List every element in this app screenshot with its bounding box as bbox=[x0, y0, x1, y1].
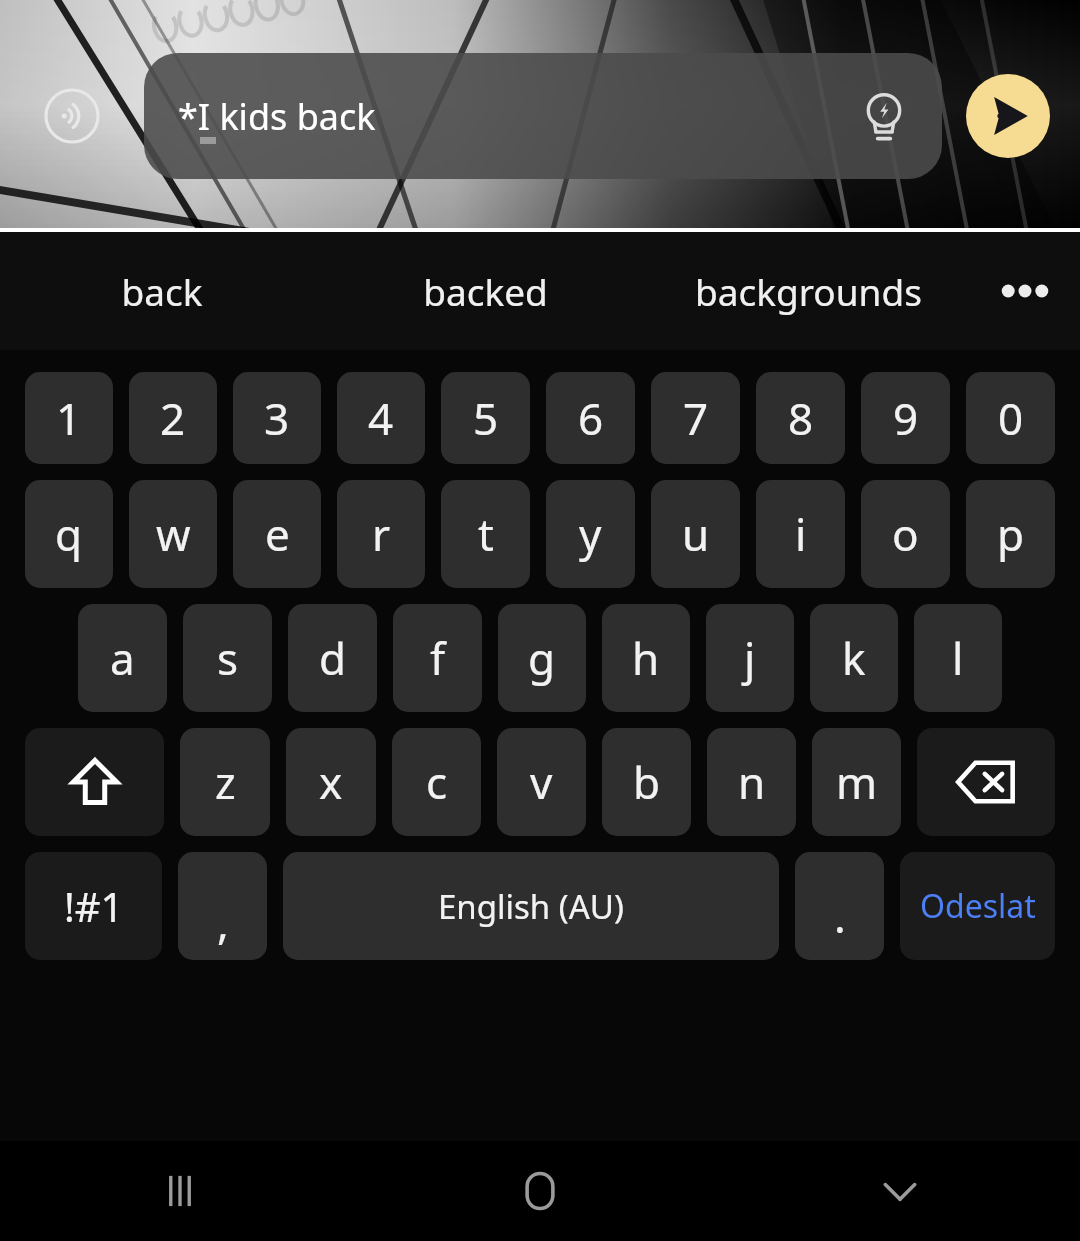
button[interactable]: Suggestions bbox=[856, 88, 912, 144]
staticText: back bbox=[121, 266, 203, 316]
button[interactable]: , bbox=[178, 852, 267, 960]
staticText: r bbox=[372, 504, 391, 564]
staticText: y bbox=[579, 504, 602, 564]
staticText: i bbox=[795, 504, 807, 564]
staticText: p bbox=[997, 504, 1025, 564]
button[interactable]: u bbox=[651, 480, 740, 588]
staticText: 4 bbox=[368, 388, 394, 448]
staticText: s bbox=[217, 628, 239, 688]
staticText: d bbox=[319, 628, 347, 688]
staticText: l bbox=[952, 628, 964, 688]
staticText: c bbox=[426, 752, 448, 812]
button[interactable]: m bbox=[812, 728, 901, 836]
button[interactable]: h bbox=[602, 604, 690, 712]
button[interactable]: a bbox=[78, 604, 167, 712]
staticText: 9 bbox=[893, 388, 919, 448]
button[interactable]: Odeslat bbox=[900, 852, 1055, 960]
staticText: English (AU) bbox=[438, 884, 624, 929]
button[interactable]: f bbox=[393, 604, 482, 712]
staticText: h bbox=[632, 628, 660, 688]
staticText: b bbox=[633, 752, 661, 812]
staticText: v bbox=[530, 752, 553, 812]
button[interactable]: English (AU) bbox=[283, 852, 779, 960]
button[interactable]: Voice input bbox=[44, 88, 100, 144]
button[interactable]: 0 bbox=[966, 372, 1055, 464]
button[interactable]: d bbox=[288, 604, 377, 712]
button[interactable]: k bbox=[810, 604, 898, 712]
staticText: f bbox=[430, 628, 446, 688]
staticText: 8 bbox=[788, 388, 814, 448]
staticText: m bbox=[836, 752, 878, 812]
staticText: 7 bbox=[683, 388, 709, 448]
button[interactable]: backgrounds bbox=[647, 232, 970, 350]
staticText: 1 bbox=[56, 388, 82, 448]
button[interactable]: Home bbox=[360, 1141, 720, 1241]
staticText: z bbox=[215, 752, 236, 812]
button[interactable]: *I kids back bbox=[144, 53, 942, 179]
staticText: 2 bbox=[160, 388, 186, 448]
staticText: 5 bbox=[473, 388, 499, 448]
staticText: u bbox=[682, 504, 710, 564]
button[interactable]: x bbox=[286, 728, 376, 836]
button[interactable]: Hide keyboard bbox=[720, 1141, 1080, 1241]
button[interactable]: i bbox=[756, 480, 845, 588]
button[interactable]: More suggestions bbox=[970, 232, 1080, 350]
staticText: j bbox=[744, 628, 756, 688]
staticText: . bbox=[834, 886, 846, 946]
button[interactable]: 2 bbox=[129, 372, 217, 464]
button[interactable]: backed bbox=[324, 232, 647, 350]
staticText: backed bbox=[423, 266, 548, 316]
button[interactable]: Recents bbox=[0, 1141, 360, 1241]
staticText: w bbox=[156, 504, 191, 564]
staticText: x bbox=[319, 752, 343, 812]
staticText: t bbox=[478, 504, 494, 564]
button[interactable]: l bbox=[914, 604, 1002, 712]
button[interactable]: e bbox=[233, 480, 321, 588]
staticText: 3 bbox=[264, 388, 290, 448]
staticText: n bbox=[738, 752, 766, 812]
staticText: , bbox=[217, 892, 229, 952]
button[interactable]: . bbox=[795, 852, 884, 960]
button[interactable]: Shift bbox=[25, 728, 164, 836]
button[interactable]: !#1 bbox=[25, 852, 162, 960]
button[interactable]: 1 bbox=[25, 372, 113, 464]
button[interactable]: 4 bbox=[337, 372, 425, 464]
button[interactable]: Send bbox=[966, 74, 1050, 158]
button[interactable]: r bbox=[337, 480, 425, 588]
button[interactable]: q bbox=[25, 480, 113, 588]
staticText: 0 bbox=[998, 388, 1024, 448]
staticText: !#1 bbox=[64, 879, 124, 933]
staticText: a bbox=[110, 628, 135, 688]
button[interactable]: b bbox=[602, 728, 691, 836]
button[interactable]: back bbox=[0, 232, 324, 350]
staticText: e bbox=[265, 504, 290, 564]
button[interactable]: z bbox=[180, 728, 270, 836]
staticText: 6 bbox=[578, 388, 604, 448]
button[interactable]: Backspace bbox=[917, 728, 1055, 836]
button[interactable]: p bbox=[966, 480, 1055, 588]
staticText: *I kids back bbox=[178, 92, 376, 141]
staticText: k bbox=[842, 628, 866, 688]
button[interactable]: 7 bbox=[651, 372, 740, 464]
button[interactable]: n bbox=[707, 728, 796, 836]
button[interactable]: v bbox=[497, 728, 586, 836]
button[interactable]: t bbox=[441, 480, 530, 588]
button[interactable]: o bbox=[861, 480, 950, 588]
staticText: q bbox=[55, 504, 83, 564]
staticText: g bbox=[528, 628, 556, 688]
button[interactable]: g bbox=[498, 604, 586, 712]
staticText: backgrounds bbox=[695, 266, 922, 316]
button[interactable]: w bbox=[129, 480, 217, 588]
button[interactable]: 8 bbox=[756, 372, 845, 464]
button[interactable]: 9 bbox=[861, 372, 950, 464]
button[interactable]: 5 bbox=[441, 372, 530, 464]
button[interactable]: j bbox=[706, 604, 794, 712]
button[interactable]: 3 bbox=[233, 372, 321, 464]
button[interactable]: c bbox=[392, 728, 481, 836]
button[interactable]: y bbox=[546, 480, 635, 588]
staticText: Odeslat bbox=[920, 884, 1036, 928]
staticText: o bbox=[892, 504, 919, 564]
button[interactable]: s bbox=[183, 604, 272, 712]
button[interactable]: 6 bbox=[546, 372, 635, 464]
